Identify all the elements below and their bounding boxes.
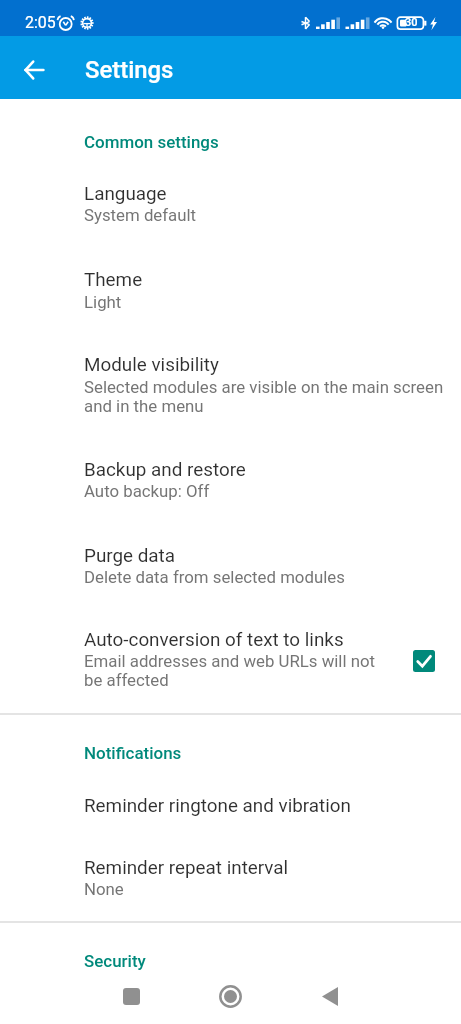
button[interactable]: Auto-conversion of text to links xyxy=(413,650,435,672)
staticText: Language xyxy=(84,183,167,205)
button[interactable]: Navigate up xyxy=(11,47,57,93)
button[interactable]: Backup and restore xyxy=(0,437,461,524)
button[interactable]: Recent apps xyxy=(82,972,180,1024)
staticText: Backup and restore xyxy=(84,459,246,481)
staticText: Reminder ringtone and vibration xyxy=(84,795,351,817)
staticText: None xyxy=(84,879,448,899)
staticText: Auto backup: Off xyxy=(84,481,448,501)
button[interactable]: Back xyxy=(281,972,379,1024)
staticText: Selected modules are visible on the main… xyxy=(84,377,454,417)
staticText: System default xyxy=(84,205,448,225)
button[interactable]: Language xyxy=(0,160,461,245)
staticText: Auto-conversion of text to links xyxy=(84,629,344,651)
staticText: Security xyxy=(84,951,146,971)
staticText: Email addresses and web URLs will not be… xyxy=(84,651,384,691)
staticText: Settings xyxy=(85,56,174,84)
staticText: 30 xyxy=(405,16,418,29)
staticText: Theme xyxy=(84,269,143,291)
button[interactable]: Module visibility xyxy=(0,332,461,437)
staticText: Delete data from selected modules xyxy=(84,567,448,587)
staticText: Light xyxy=(84,292,448,312)
button[interactable]: Home xyxy=(181,972,280,1024)
staticText: Notifications xyxy=(84,743,182,763)
button[interactable]: Theme xyxy=(0,245,461,332)
button[interactable]: Auto-conversion of text to links xyxy=(0,609,461,712)
staticText: Reminder repeat interval xyxy=(84,857,289,879)
button[interactable]: Reminder ringtone and vibration xyxy=(0,775,461,836)
staticText: Common settings xyxy=(84,132,219,152)
staticText: Purge data xyxy=(84,545,176,567)
button[interactable]: Reminder repeat interval xyxy=(0,836,461,920)
staticText: Module visibility xyxy=(84,354,219,376)
button[interactable]: Purge data xyxy=(0,524,461,609)
staticText: 2:05 xyxy=(25,13,56,32)
